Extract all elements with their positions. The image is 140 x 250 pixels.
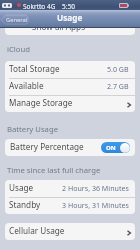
staticText: 5.0 GB <box>107 64 129 74</box>
staticText: Standby <box>9 199 41 210</box>
button[interactable]: Usage <box>5 180 135 197</box>
staticText: iCloud <box>7 44 30 54</box>
staticText: Time since last full charge <box>7 165 101 175</box>
staticText: 5:50 <box>62 2 75 11</box>
staticText: Battery Usage <box>7 124 58 134</box>
staticText: 2 Hours, 36 Minutes <box>62 183 129 193</box>
staticText: 3 Hours, 31 Minutes <box>62 200 129 210</box>
button[interactable]: Cellular Usage <box>5 223 135 240</box>
staticText: Usage <box>57 12 83 23</box>
staticText: Show all Apps <box>32 21 86 32</box>
staticText: Total Storage <box>9 63 60 74</box>
staticText: General <box>6 16 28 24</box>
staticText: Available <box>9 80 44 91</box>
staticText: ON <box>106 144 116 152</box>
staticText: 4G <box>47 2 56 11</box>
button[interactable]: Total Storage <box>5 61 135 78</box>
button[interactable]: Back to General <box>1 15 28 24</box>
staticText: Sokrtto <box>23 2 46 11</box>
staticText: Manage Storage <box>9 97 73 108</box>
staticText: Cellular Usage <box>9 225 65 236</box>
button[interactable]: Standby <box>5 197 135 214</box>
staticText: 2.7 GB <box>107 81 129 91</box>
button[interactable]: Battery Percentage <box>5 139 135 156</box>
button[interactable]: Available <box>5 78 135 95</box>
staticText: Usage <box>9 182 34 193</box>
button[interactable]: Manage Storage <box>5 95 135 112</box>
staticText: Battery Percentage <box>10 141 84 152</box>
button[interactable]: Show all Apps <box>5 18 135 35</box>
